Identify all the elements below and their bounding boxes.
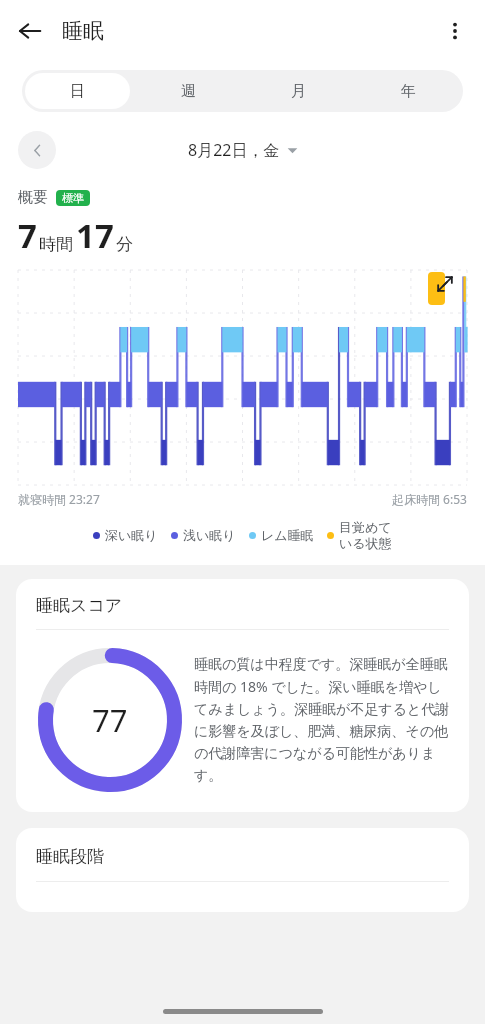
staticText: 年 <box>401 82 416 101</box>
staticText: 就寝時間 23:27 <box>18 491 100 507</box>
staticText: 8月22日，金 <box>188 139 280 161</box>
staticText: 睡眠 <box>62 18 104 44</box>
button[interactable]: 週 <box>136 73 240 109</box>
button[interactable]: 月 <box>246 73 350 109</box>
button[interactable]: Previous day <box>18 131 56 169</box>
button[interactable]: More options <box>431 7 479 55</box>
staticText: 起床時間 6:53 <box>392 491 467 507</box>
button[interactable]: Back <box>6 7 54 55</box>
staticText: 睡眠スコア <box>36 595 123 616</box>
staticText: 概要 <box>18 188 48 207</box>
button[interactable]: 日 <box>25 73 130 109</box>
button[interactable]: 睡眠段階 <box>16 828 469 912</box>
staticText: 目覚めて <box>339 519 392 535</box>
staticText: 日 <box>70 82 85 101</box>
staticText: 分 <box>116 234 133 255</box>
button[interactable]: 年 <box>356 73 460 109</box>
button[interactable]: 睡眠スコア <box>16 579 469 812</box>
staticText: 時間 <box>39 234 73 255</box>
button[interactable]: 8月22日，金 <box>182 135 304 165</box>
staticText: 週 <box>181 82 196 101</box>
staticText: 深い眠り <box>105 527 158 543</box>
staticText: いる状態 <box>339 535 392 551</box>
staticText: 月 <box>291 82 306 101</box>
staticText: レム睡眠 <box>261 527 314 543</box>
staticText: 77 <box>92 699 128 741</box>
staticText: 7 <box>18 213 37 258</box>
staticText: 睡眠の質は中程度です。深睡眠が全睡眠時間の 18% でした。深い睡眠を増やしてみ… <box>194 656 451 785</box>
staticText: 浅い眠り <box>183 527 236 543</box>
staticText: 17 <box>76 213 114 258</box>
button[interactable]: Expand chart <box>428 272 445 305</box>
staticText: 睡眠段階 <box>36 846 104 867</box>
staticText: 標準 <box>62 191 84 205</box>
